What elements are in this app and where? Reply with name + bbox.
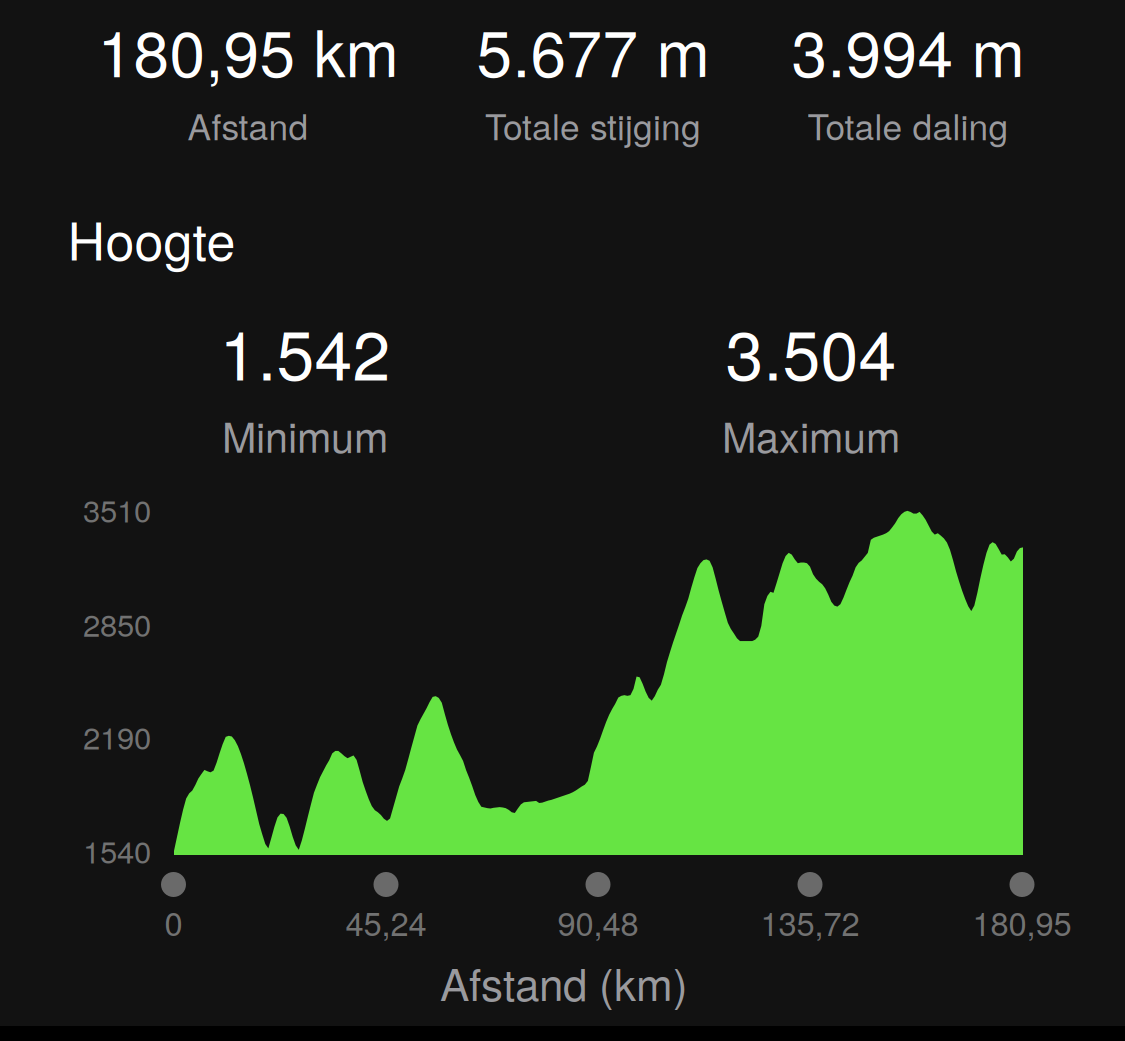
staticText: 3510 [83,487,151,531]
staticText: 90,48 [557,899,638,945]
staticText: 5.677 m [476,4,709,95]
button[interactable]: Totale stijging [485,100,701,150]
staticText: 2190 [83,714,151,758]
staticText: Totale daling [807,100,1008,150]
button[interactable]: 1.542 [219,302,390,400]
button[interactable]: Elevation profile [174,510,1023,855]
button[interactable]: 180,95 km [97,4,398,95]
staticText: 2850 [83,601,151,646]
button[interactable]: Totale daling [807,100,1008,150]
button[interactable]: Maximum [722,405,900,465]
button[interactable]: Minimum [222,405,388,465]
staticText: 135,72 [760,899,859,945]
staticText: Afstand [187,100,308,150]
staticText: 45,24 [345,899,426,945]
staticText: Hoogte [67,201,235,275]
staticText: 1540 [83,828,151,872]
staticText: Maximum [722,405,900,465]
staticText: 0 [164,899,182,945]
staticText: 1.542 [219,302,390,400]
staticText: 3.994 m [791,4,1024,95]
button[interactable]: 3.504 [725,302,896,400]
staticText: 180,95 km [97,4,398,95]
staticText: 180,95 [972,899,1071,945]
staticText: 3.504 [725,302,896,400]
button[interactable]: 5.677 m [476,4,709,95]
button[interactable]: Afstand [187,100,308,150]
staticText: Afstand (km) [440,950,688,1013]
staticText: Minimum [222,405,388,465]
staticText: Totale stijging [485,100,701,150]
button[interactable]: 3.994 m [791,4,1024,95]
